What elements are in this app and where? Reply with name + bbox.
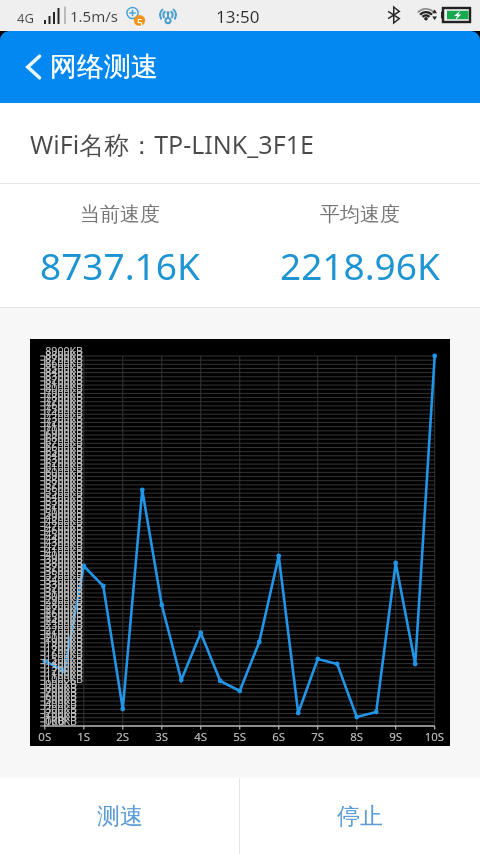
button[interactable]: 停止: [240, 778, 480, 854]
staticText: 1.5m/s: [70, 6, 118, 26]
staticText: 2218.96K: [280, 240, 440, 290]
button[interactable]: 测速: [0, 778, 239, 854]
button[interactable]: Back: [11, 45, 55, 89]
staticText: 8737.16K: [40, 240, 200, 290]
staticText: 停止: [337, 802, 383, 831]
staticText: 测速: [97, 802, 143, 831]
staticText: WiFi名称：TP-LINK_3F1E: [30, 127, 314, 161]
staticText: 当前速度: [80, 202, 160, 227]
staticText: 网络测速: [50, 50, 158, 84]
staticText: 5: [137, 16, 143, 30]
staticText: 13:50: [216, 5, 260, 28]
staticText: 4G: [17, 9, 34, 27]
staticText: 平均速度: [320, 202, 400, 227]
